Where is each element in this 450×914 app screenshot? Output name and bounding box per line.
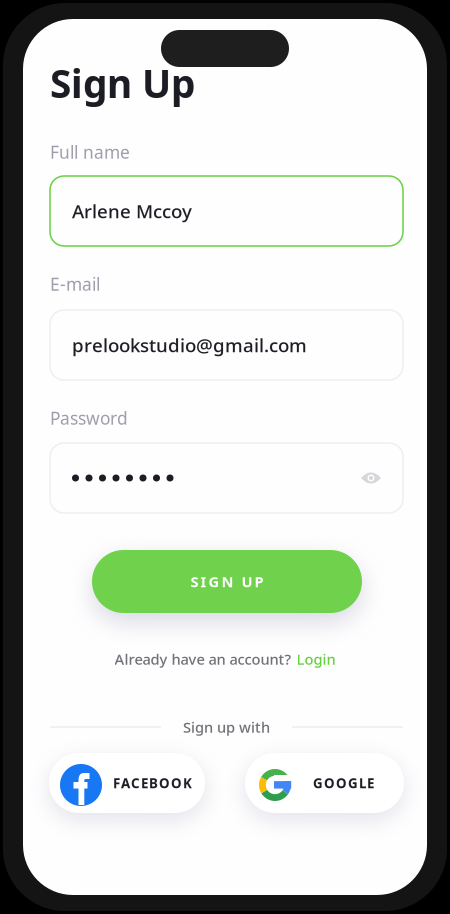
staticText: S I G N U P — [190, 572, 263, 591]
staticText: Password — [50, 406, 128, 429]
button[interactable]: Already have an account? — [23, 649, 427, 669]
staticText: Sign Up — [50, 57, 195, 109]
staticText: prelookstudio@gmail.com — [72, 333, 307, 357]
staticText: G O O G L E — [313, 774, 374, 792]
staticText: E-mail — [50, 272, 100, 295]
button[interactable]: S I G N U P — [92, 550, 362, 613]
staticText: Login — [296, 649, 335, 669]
button[interactable]: G O O G L E — [245, 753, 404, 813]
staticText: Already have an account? — [114, 649, 291, 669]
staticText: F A C E B O O K — [113, 774, 192, 792]
staticText: Full name — [50, 140, 130, 163]
staticText: Arlene Mccoy — [72, 199, 192, 223]
button[interactable]: F A C E B O O K — [49, 753, 205, 813]
staticText: Sign up with — [183, 717, 270, 737]
